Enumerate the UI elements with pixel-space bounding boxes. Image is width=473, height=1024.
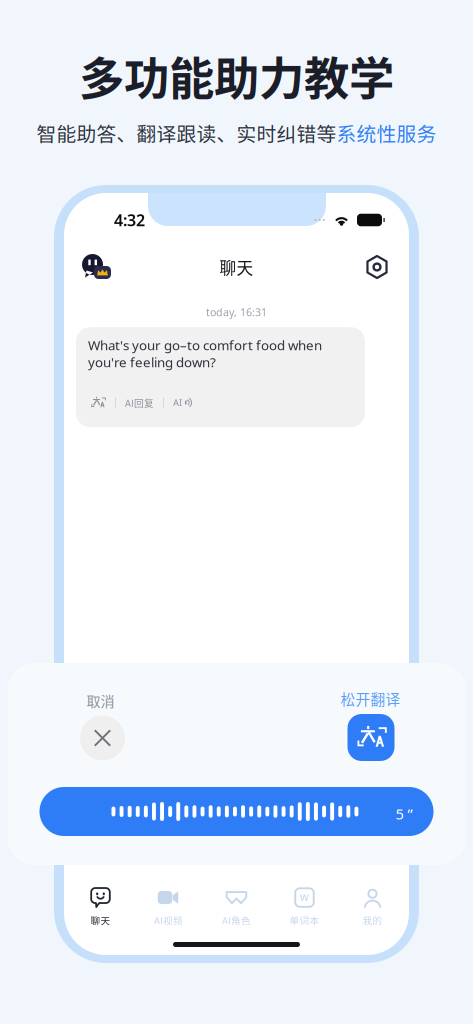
button[interactable]: AI [173, 395, 193, 410]
staticText: 聊天 [219, 255, 253, 279]
staticText: 多功能助力教学 [79, 43, 394, 109]
button[interactable]: Translate [90, 395, 106, 410]
staticText: 智能助答、翻译跟读、实时纠错等 [36, 119, 336, 147]
button[interactable]: Settings [355, 248, 399, 286]
staticText: 4:32 [114, 209, 145, 231]
button[interactable]: W [270, 885, 338, 929]
staticText: you're feeling down? [88, 353, 216, 371]
staticText: AI视频 [154, 913, 183, 927]
staticText: AI角色 [222, 913, 251, 927]
staticText: 我的 [362, 913, 382, 927]
staticText: 系统性服务 [336, 119, 436, 147]
button[interactable]: 我的 [338, 885, 406, 929]
staticText: 单词本 [289, 913, 319, 927]
button[interactable]: AI视频 [134, 885, 202, 929]
staticText: What's your go–to comfort food when [88, 336, 322, 354]
button[interactable]: 聊天 [66, 885, 134, 929]
staticText: 聊天 [90, 913, 110, 927]
staticText: 松开翻译 [340, 688, 400, 709]
staticText: AI回复 [125, 396, 154, 410]
button[interactable]: Cancel [80, 715, 125, 760]
staticText: today, 16:31 [206, 305, 267, 319]
staticText: 5 ” [395, 804, 412, 823]
button[interactable]: Profile [74, 248, 118, 286]
button[interactable]: AI角色 [202, 885, 270, 929]
button[interactable]: Release to translate [347, 714, 394, 761]
staticText: W [300, 891, 309, 904]
staticText: AI [173, 396, 182, 409]
staticText: 取消 [86, 690, 114, 710]
button[interactable]: AI回复 [125, 395, 154, 410]
